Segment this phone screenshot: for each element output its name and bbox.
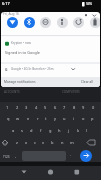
staticText: j <box>68 128 70 133</box>
staticText: 2 <box>16 105 19 110</box>
staticText: z <box>16 140 18 145</box>
button[interactable] <box>0 166 33 180</box>
staticText: x <box>25 140 28 145</box>
staticText: 4 <box>35 105 38 110</box>
staticText: k <box>77 128 80 133</box>
button[interactable]: a <box>5 128 95 133</box>
staticText: 3 <box>25 105 28 110</box>
staticText: G <box>5 67 8 72</box>
staticText: , <box>15 153 17 158</box>
staticText: Fri, Aug 16 <box>3 12 19 16</box>
staticText: Google • 4G In Barcelon • 26m <box>11 67 54 71</box>
staticText: f <box>40 128 42 133</box>
staticText: n <box>61 140 64 145</box>
staticText: 6 <box>54 105 57 110</box>
staticText: y <box>54 116 57 121</box>
staticText: 5 <box>44 105 47 110</box>
button[interactable] <box>80 150 92 162</box>
button[interactable]: G <box>1 63 100 77</box>
staticText: ?123 <box>3 155 10 159</box>
button[interactable] <box>33 166 67 180</box>
button[interactable] <box>40 17 51 28</box>
staticText: w <box>16 116 20 121</box>
staticText: 8 <box>73 105 76 110</box>
staticText: d <box>30 128 33 133</box>
staticText: 6:17 <box>2 1 10 6</box>
staticText: m <box>70 140 74 145</box>
staticText: ACCOUNTS <box>4 90 20 94</box>
staticText: 0 <box>92 105 95 110</box>
staticText: i <box>73 116 75 121</box>
button[interactable]: z <box>10 140 80 145</box>
staticText: a <box>12 128 15 133</box>
staticText: u <box>63 116 66 121</box>
button[interactable]: Clear all <box>81 80 94 84</box>
staticText: q <box>7 116 10 121</box>
staticText: Signed in to Google <box>5 50 40 55</box>
staticText: t <box>45 116 47 121</box>
staticText: Krypton • now <box>11 41 31 45</box>
button[interactable] <box>1 77 100 87</box>
button[interactable]: Krypton • now <box>1 36 100 63</box>
staticText: Manage notifications <box>4 80 36 84</box>
button[interactable] <box>90 17 100 28</box>
staticText: s <box>21 128 23 133</box>
staticText: p <box>91 116 94 121</box>
staticText: 94% <box>86 2 93 6</box>
staticText: o <box>82 116 85 121</box>
button[interactable] <box>24 17 35 28</box>
staticText: Clear all <box>81 80 94 84</box>
staticText: 7 <box>63 105 66 110</box>
staticText: h <box>58 128 61 133</box>
staticText: v <box>42 140 45 145</box>
staticText: 9 <box>82 105 85 110</box>
button[interactable] <box>67 166 101 180</box>
staticText: b <box>51 140 54 145</box>
staticText: . <box>70 152 72 157</box>
button[interactable] <box>57 17 68 28</box>
button[interactable] <box>7 17 18 28</box>
staticText: r <box>37 116 39 121</box>
staticText: g <box>49 128 52 133</box>
button[interactable]: 1 <box>0 105 101 110</box>
staticText: c <box>34 140 36 145</box>
staticText: COMPUTERS <box>62 90 80 94</box>
button[interactable] <box>73 17 84 28</box>
button[interactable]: q <box>0 116 101 121</box>
staticText: l <box>86 128 88 133</box>
staticText: e <box>27 116 30 121</box>
staticText: 1 <box>6 105 9 110</box>
